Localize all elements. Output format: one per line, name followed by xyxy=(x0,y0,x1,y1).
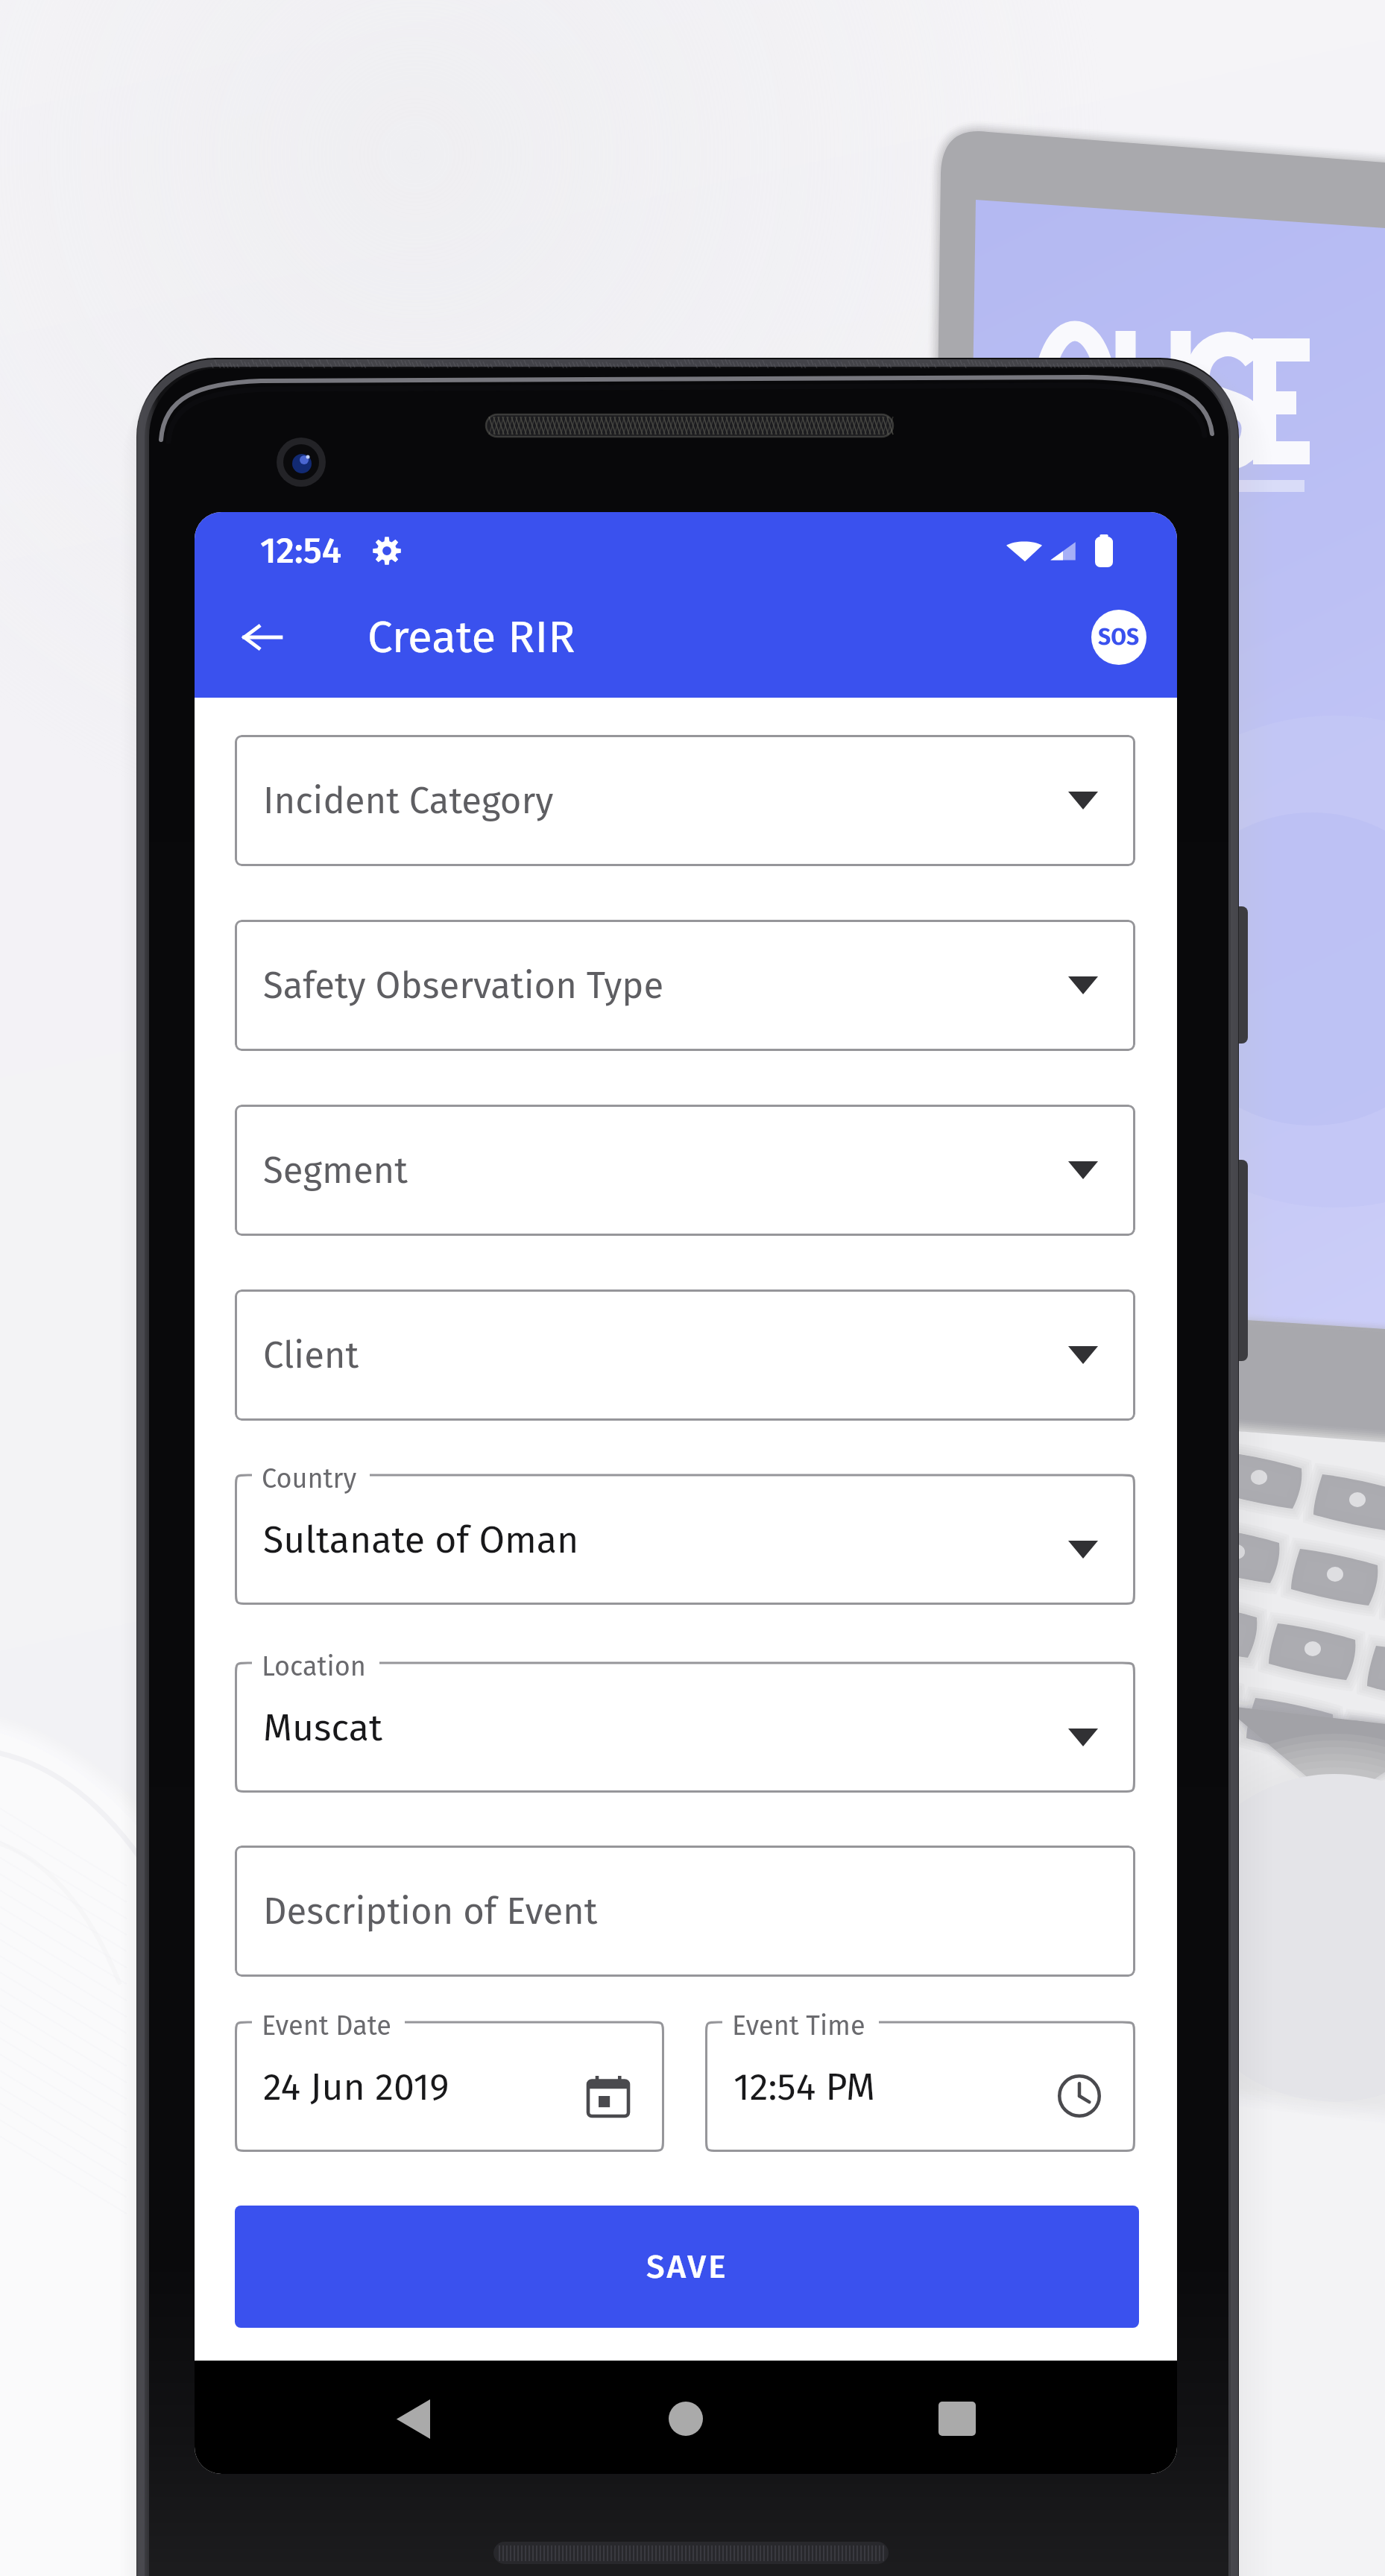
staticText: Create RIR xyxy=(367,610,575,664)
staticText: Safety Observation Type xyxy=(263,964,664,1008)
button[interactable]: Event Date xyxy=(235,2004,664,2152)
button[interactable]: Home xyxy=(650,2383,722,2455)
staticText: Description of Event xyxy=(263,1890,598,1933)
staticText: Client xyxy=(263,1333,359,1377)
button[interactable]: Location xyxy=(235,1645,1135,1793)
button[interactable]: Navigate back xyxy=(224,600,299,675)
staticText: Event Date xyxy=(262,2010,391,2042)
button[interactable]: Country xyxy=(235,1457,1135,1605)
staticText: SAVE xyxy=(646,2247,728,2287)
staticText: 12:54 PM xyxy=(733,2065,875,2109)
staticText: Muscat xyxy=(263,1705,382,1750)
staticText: Segment xyxy=(263,1149,408,1193)
button[interactable]: SOS xyxy=(1091,610,1146,665)
staticText: Country xyxy=(262,1462,357,1494)
staticText: Location xyxy=(262,1650,366,1682)
button[interactable]: Recent apps xyxy=(921,2383,993,2455)
staticText: 24 Jun 2019 xyxy=(263,2065,449,2109)
staticText: Sultanate of Oman xyxy=(263,1518,579,1562)
button[interactable]: Incident Category xyxy=(235,735,1135,866)
button[interactable]: Description of Event xyxy=(235,1846,1135,1977)
staticText: Incident Category xyxy=(263,779,554,823)
button[interactable]: Back xyxy=(376,2383,448,2455)
button[interactable]: Event Time xyxy=(705,2004,1135,2152)
staticText: SOS xyxy=(1098,624,1140,651)
button[interactable]: Safety Observation Type xyxy=(235,920,1135,1051)
button[interactable]: Client xyxy=(235,1289,1135,1421)
staticText: 12:54 xyxy=(260,529,342,572)
staticText: Event Time xyxy=(732,2010,865,2042)
button[interactable]: SAVE xyxy=(235,2206,1139,2328)
button[interactable]: Segment xyxy=(235,1105,1135,1236)
